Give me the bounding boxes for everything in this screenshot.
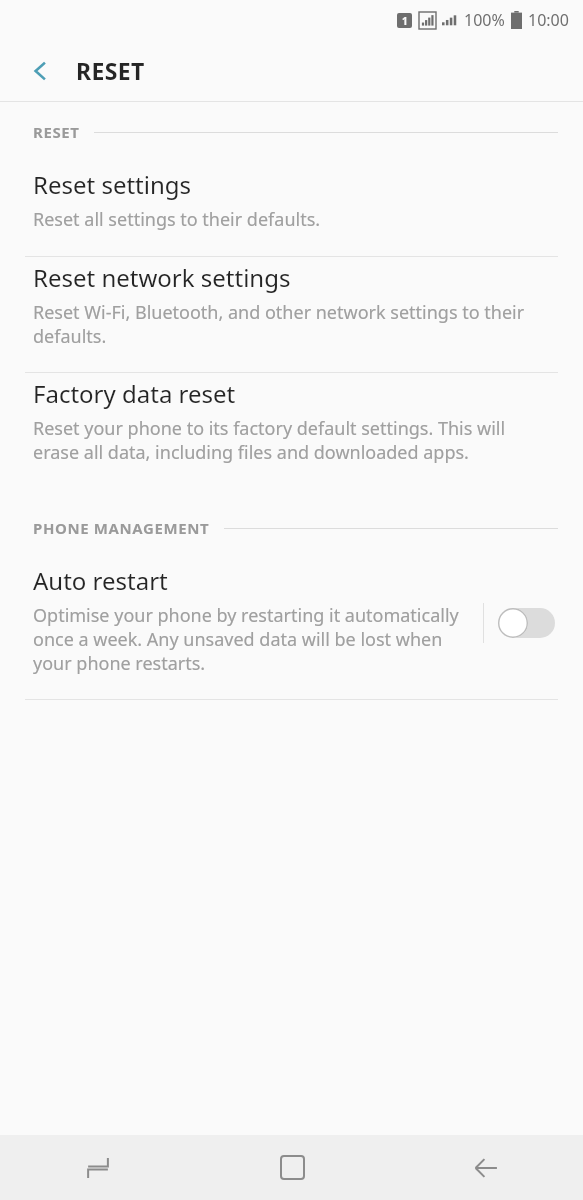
- button[interactable]: Back: [18, 49, 62, 93]
- staticText: Factory data reset: [33, 377, 236, 410]
- button[interactable]: Factory data reset: [0, 373, 583, 488]
- button[interactable]: Home: [195, 1135, 389, 1200]
- button[interactable]: Back: [389, 1135, 583, 1200]
- staticText: 100%: [464, 9, 505, 31]
- button[interactable]: Auto restart: [0, 560, 583, 699]
- button[interactable]: Reset settings: [0, 164, 583, 256]
- staticText: PHONE MANAGEMENT: [33, 518, 210, 538]
- staticText: RESET: [33, 122, 80, 142]
- staticText: RESET: [76, 55, 145, 86]
- staticText: Reset your phone to its factory default …: [33, 416, 545, 464]
- staticText: Reset all settings to their defaults.: [33, 207, 321, 232]
- staticText: Reset network settings: [33, 261, 291, 294]
- button[interactable]: Reset network settings: [0, 257, 583, 372]
- staticText: 10:00: [528, 9, 569, 31]
- button[interactable]: Recents: [0, 1135, 195, 1200]
- staticText: Reset settings: [33, 168, 192, 201]
- staticText: 1: [402, 14, 408, 28]
- button[interactable]: Auto restart toggle: [484, 600, 563, 646]
- staticText: Optimise your phone by restarting it aut…: [33, 603, 471, 675]
- staticText: Reset Wi-Fi, Bluetooth, and other networ…: [33, 300, 545, 348]
- staticText: Auto restart: [33, 564, 168, 597]
